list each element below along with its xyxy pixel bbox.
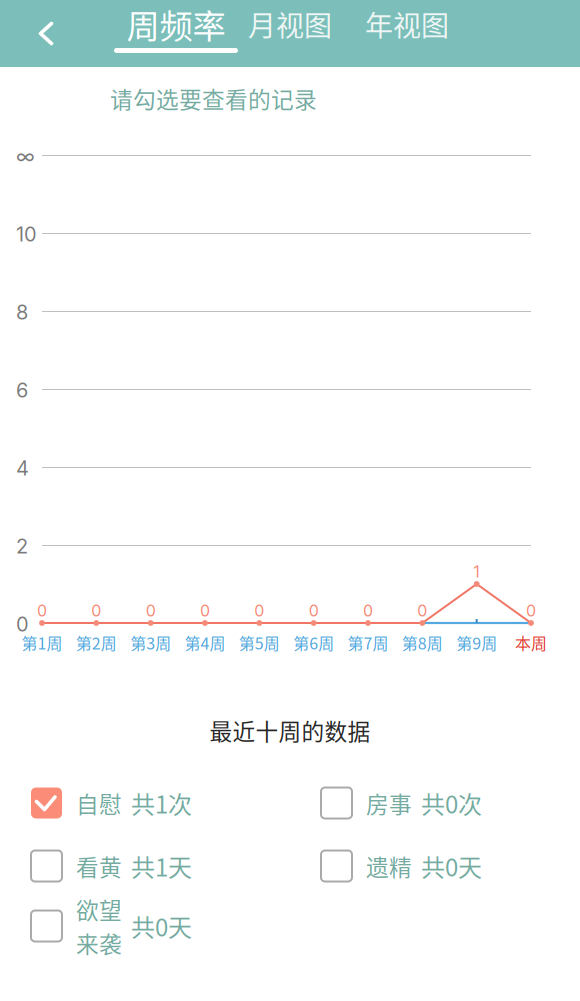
staticText: 本周 (515, 631, 547, 654)
staticText: 共1天 (131, 849, 192, 883)
staticText: 0 (200, 601, 210, 620)
staticText: 共0天 (131, 909, 192, 943)
staticText: 年视图 (365, 4, 449, 44)
staticText: 第4周 (184, 631, 225, 654)
staticText: 第8周 (402, 631, 443, 654)
staticText: 来袭 (76, 926, 122, 959)
staticText: 第1周 (21, 631, 62, 654)
staticText: 自慰 (76, 787, 122, 819)
staticText: 房事 (366, 787, 412, 819)
button[interactable]: 欲望 (0, 0, 286, 953)
staticText: 第7周 (347, 631, 388, 654)
staticText: 0 (309, 601, 319, 620)
staticText: 0 (37, 601, 47, 620)
button[interactable]: 周频率 (111, 0, 241, 62)
staticText: 0 (363, 601, 373, 620)
staticText: 月视图 (248, 4, 332, 44)
staticText: 0 (526, 601, 536, 620)
staticText: 0 (417, 601, 427, 620)
staticText: 0 (16, 612, 29, 636)
staticText: 第5周 (239, 631, 280, 654)
staticText: 第3周 (130, 631, 171, 654)
staticText: 看黄 (76, 850, 122, 882)
staticText: 0 (146, 601, 156, 620)
staticText: 共1次 (131, 786, 192, 820)
staticText: 10 (16, 222, 37, 246)
staticText: 0 (254, 601, 264, 620)
staticText: 2 (16, 534, 28, 558)
button[interactable]: 自慰 (0, 0, 286, 830)
staticText: 第6周 (293, 631, 334, 654)
staticText: 欲望 (76, 893, 122, 925)
staticText: 周频率 (126, 0, 225, 48)
button[interactable]: 房事 (0, 0, 576, 830)
staticText: 共0次 (421, 786, 482, 820)
staticText: 第2周 (76, 631, 117, 654)
staticText: ∞ (16, 144, 35, 168)
staticText: 4 (16, 456, 29, 480)
staticText: 0 (91, 601, 101, 620)
staticText: 6 (16, 378, 28, 402)
staticText: 共0天 (421, 849, 482, 883)
button[interactable]: 年视图 (352, 4, 462, 44)
staticText: 8 (16, 300, 28, 324)
staticText: 1 (473, 562, 480, 581)
button[interactable]: 月视图 (235, 4, 345, 44)
button[interactable]: 遗精 (0, 0, 576, 893)
staticText: 最近十周的数据 (209, 714, 370, 747)
staticText: 遗精 (366, 850, 412, 882)
staticText: 请勾选要查看的记录 (110, 82, 317, 115)
staticText: 第9周 (456, 631, 497, 654)
button[interactable]: Back (0, 0, 580, 1001)
button[interactable]: 看黄 (0, 0, 286, 893)
